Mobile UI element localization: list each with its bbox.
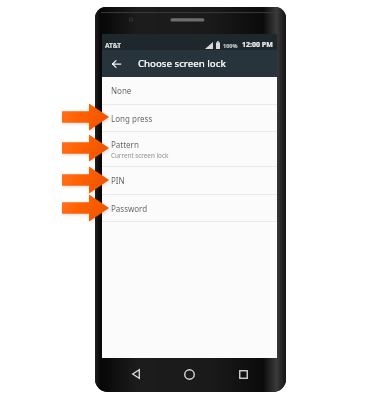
staticText: Long press — [111, 113, 153, 124]
staticText: 100% — [223, 42, 238, 49]
staticText: Current screen lock — [111, 151, 169, 160]
button[interactable]: Recent apps — [230, 361, 256, 387]
staticText: Pattern — [111, 139, 139, 150]
staticText: Choose screen lock — [138, 57, 226, 70]
staticText: Password — [111, 203, 148, 214]
button[interactable]: Password — [102, 195, 277, 221]
staticText: None — [111, 85, 132, 96]
button[interactable]: None — [102, 77, 277, 104]
button[interactable]: Long press — [102, 105, 277, 131]
staticText: PIN — [111, 175, 125, 186]
staticText: AT&T — [105, 41, 122, 50]
button[interactable]: Back — [123, 361, 149, 387]
button[interactable]: Home — [176, 361, 202, 387]
button[interactable]: Pattern — [102, 132, 277, 166]
button[interactable]: Navigate up — [108, 55, 125, 72]
button[interactable]: PIN — [102, 167, 277, 194]
staticText: 12:00 PM — [242, 40, 273, 50]
